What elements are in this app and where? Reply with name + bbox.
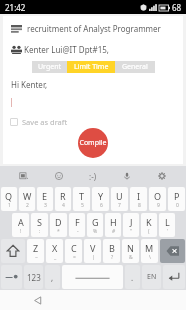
staticText: F: [75, 216, 80, 228]
button[interactable]: R: [55, 187, 71, 211]
staticText: *: [57, 228, 60, 235]
staticText: C: [71, 242, 77, 254]
button[interactable]: F: [69, 213, 85, 237]
button[interactable]: Save as draft: [10, 117, 68, 127]
staticText: D: [55, 216, 62, 228]
button[interactable]: A: [12, 213, 29, 237]
button[interactable]: C: [65, 239, 82, 263]
staticText: 6: [100, 202, 103, 209]
staticText: I: [137, 190, 141, 202]
button[interactable]: X: [46, 239, 63, 263]
button[interactable]: O: [149, 187, 166, 211]
button[interactable]: B: [103, 239, 120, 263]
button[interactable]: Subject: [11, 23, 175, 34]
staticText: Q: [5, 190, 13, 202]
staticText: A: [18, 216, 24, 228]
staticText: :: [39, 228, 41, 235]
staticText: |: [92, 254, 95, 261]
staticText: 8: [138, 202, 141, 209]
button[interactable]: Compile: [78, 128, 108, 158]
button[interactable]: M: [141, 239, 158, 263]
staticText: J: [130, 216, 133, 228]
staticText: 7: [118, 202, 121, 209]
button[interactable]: D: [50, 213, 67, 237]
staticText: B: [109, 242, 115, 254]
other: Subject: [11, 25, 22, 33]
staticText: M: [145, 242, 154, 254]
staticText: 2: [26, 202, 29, 209]
button[interactable]: J: [123, 213, 139, 237]
button[interactable]: .: [125, 265, 140, 289]
staticText: &: [129, 254, 133, 261]
button[interactable]: General: [115, 61, 155, 73]
staticText: .: [131, 272, 134, 283]
button[interactable]: 123: [24, 265, 43, 289]
staticText: G: [92, 216, 99, 228]
button[interactable]: Clipboard: [14, 166, 34, 186]
button[interactable]: E: [37, 187, 53, 211]
button[interactable]: K: [141, 213, 157, 237]
staticText: Save as draft: [22, 117, 68, 127]
staticText: ": [130, 228, 133, 235]
button[interactable]: Space: [62, 265, 123, 289]
button[interactable]: N: [122, 239, 139, 263]
other: Recipients: [11, 45, 22, 54]
button[interactable]: Emoticons: [83, 166, 103, 186]
staticText: =: [73, 254, 76, 261]
button[interactable]: P: [168, 187, 185, 211]
button[interactable]: T: [73, 187, 90, 211]
staticText: N: [127, 242, 134, 254]
button[interactable]: Voice input: [117, 166, 137, 186]
button[interactable]: U: [111, 187, 128, 211]
staticText: R: [60, 190, 66, 202]
staticText: !: [20, 228, 22, 235]
button[interactable]: ,: [45, 265, 60, 289]
staticText: (: [148, 228, 150, 235]
button[interactable]: Back: [28, 291, 46, 309]
staticText: 9: [157, 202, 160, 209]
staticText: _: [54, 254, 57, 261]
button[interactable]: Q: [1, 187, 17, 211]
button[interactable]: Settings: [152, 166, 172, 186]
button[interactable]: I: [130, 187, 147, 211]
staticText: X: [52, 242, 58, 254]
staticText: L: [165, 216, 170, 228]
staticText: \: [149, 254, 151, 261]
button[interactable]: Backspace: [160, 239, 185, 263]
staticText: General: [122, 62, 148, 72]
button[interactable]: Enter: [163, 265, 185, 289]
staticText: Urgent: [38, 62, 62, 72]
staticText: -: [77, 228, 79, 235]
button[interactable]: Y: [92, 187, 109, 211]
staticText: Y: [98, 190, 104, 202]
button[interactable]: Recipients: [11, 44, 175, 55]
button[interactable]: L: [159, 213, 175, 237]
button[interactable]: EN: [142, 265, 161, 289]
staticText: #: [112, 228, 116, 235]
staticText: W: [23, 190, 32, 202]
button[interactable]: G: [87, 213, 103, 237]
staticText: Z: [33, 242, 39, 254]
button[interactable]: Z: [27, 239, 44, 263]
staticText: %: [93, 228, 98, 235]
staticText: P: [174, 190, 180, 202]
staticText: ,: [51, 272, 54, 283]
staticText: 4: [62, 202, 65, 209]
button[interactable]: Limit Time: [67, 61, 115, 73]
staticText: Limit Time: [74, 62, 109, 72]
staticText: 5: [81, 202, 84, 209]
button[interactable]: H: [105, 213, 121, 237]
staticText: V: [90, 242, 96, 254]
button[interactable]: Emoji keyboard: [1, 265, 22, 289]
button[interactable]: Urgent: [32, 61, 67, 73]
button[interactable]: Shift: [1, 239, 25, 263]
button[interactable]: Emoji: [49, 166, 69, 186]
button[interactable]: V: [84, 239, 101, 263]
button[interactable]: S: [31, 213, 48, 237]
staticText: ?: [111, 254, 114, 261]
staticText: H: [110, 216, 117, 228]
staticText: T: [79, 190, 85, 202]
staticText: 21:42: [5, 2, 26, 13]
button[interactable]: W: [19, 187, 35, 211]
staticText: Kenter Lui@IT Dpt#15,: [24, 44, 109, 55]
